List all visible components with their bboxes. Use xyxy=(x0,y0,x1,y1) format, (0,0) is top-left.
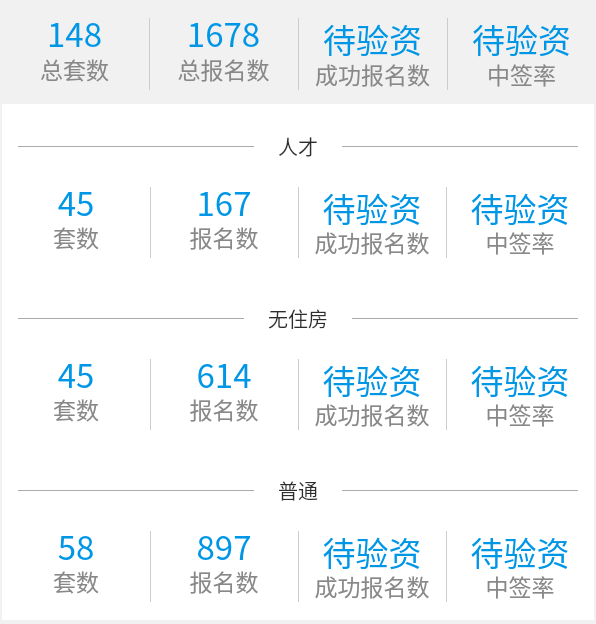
staticText: 中签率 xyxy=(446,397,594,430)
button[interactable]: 58 xyxy=(2,484,150,620)
button[interactable]: 1678 xyxy=(149,0,298,104)
button[interactable]: 待验资 xyxy=(447,0,596,104)
staticText: 167 xyxy=(150,178,298,226)
staticText: 45 xyxy=(2,350,150,398)
staticText: 待验资 xyxy=(446,184,594,232)
staticText: 总套数 xyxy=(0,52,149,85)
staticText: 总报名数 xyxy=(149,52,298,85)
button[interactable]: 待验资 xyxy=(298,140,446,276)
button[interactable]: 614 xyxy=(150,312,298,448)
staticText: 套数 xyxy=(2,220,150,253)
staticText: 报名数 xyxy=(150,220,298,253)
staticText: 普通 xyxy=(278,476,318,505)
button[interactable]: 待验资 xyxy=(446,312,594,448)
staticText: 待验资 xyxy=(298,528,446,576)
staticText: 成功报名数 xyxy=(298,57,447,90)
staticText: 成功报名数 xyxy=(298,225,446,258)
staticText: 中签率 xyxy=(446,225,594,258)
button[interactable]: 待验资 xyxy=(298,484,446,620)
button[interactable]: 45 xyxy=(2,140,150,276)
staticText: 中签率 xyxy=(447,57,596,90)
staticText: 中签率 xyxy=(446,569,594,602)
staticText: 套数 xyxy=(2,392,150,425)
button[interactable]: 167 xyxy=(150,140,298,276)
staticText: 897 xyxy=(150,522,298,570)
staticText: 套数 xyxy=(2,564,150,597)
staticText: 58 xyxy=(2,522,150,570)
button[interactable]: 45 xyxy=(2,312,150,448)
staticText: 待验资 xyxy=(298,184,446,232)
button[interactable]: 897 xyxy=(150,484,298,620)
staticText: 成功报名数 xyxy=(298,397,446,430)
staticText: 1678 xyxy=(149,9,298,57)
button[interactable]: 待验资 xyxy=(446,140,594,276)
staticText: 报名数 xyxy=(150,392,298,425)
staticText: 人才 xyxy=(278,132,318,161)
staticText: 待验资 xyxy=(446,356,594,404)
staticText: 待验资 xyxy=(298,15,447,63)
button[interactable]: 待验资 xyxy=(298,0,447,104)
button[interactable]: 148 xyxy=(0,0,149,104)
staticText: 成功报名数 xyxy=(298,569,446,602)
staticText: 报名数 xyxy=(150,564,298,597)
staticText: 45 xyxy=(2,178,150,226)
staticText: 待验资 xyxy=(447,15,596,63)
button[interactable]: 待验资 xyxy=(298,312,446,448)
staticText: 614 xyxy=(150,350,298,398)
button[interactable]: 待验资 xyxy=(446,484,594,620)
staticText: 无住房 xyxy=(268,304,328,333)
staticText: 待验资 xyxy=(298,356,446,404)
staticText: 148 xyxy=(0,9,149,57)
staticText: 待验资 xyxy=(446,528,594,576)
